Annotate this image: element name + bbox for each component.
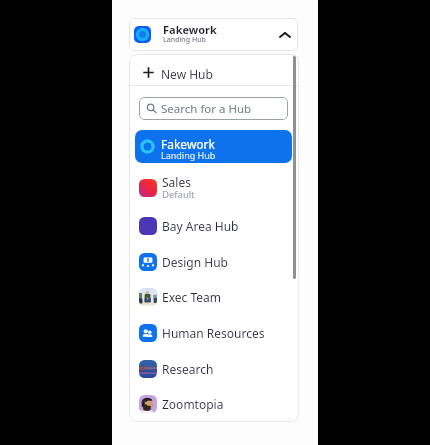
button[interactable]: Sales	[129, 167, 299, 208]
staticText: Landing Hub	[161, 149, 216, 161]
button[interactable]: New Hub	[129, 54, 299, 85]
button[interactable]: Search for a Hub	[139, 97, 288, 120]
button[interactable]: Fakework	[129, 18, 298, 51]
staticText: Zoomtopia	[162, 396, 224, 412]
staticText: Sales	[162, 174, 191, 190]
staticText: Search for a Hub	[161, 101, 252, 117]
staticText: Bay Area Hub	[162, 218, 239, 234]
button[interactable]: Human Resources	[129, 315, 299, 351]
staticText: Landing Hub	[163, 35, 206, 45]
other: Collapse hub list	[278, 28, 292, 42]
button[interactable]: Research	[129, 351, 299, 387]
staticText: Fakework	[161, 136, 215, 152]
button[interactable]: Bay Area Hub	[129, 208, 299, 244]
button[interactable]: Fakework	[135, 130, 292, 163]
staticText: New Hub	[161, 66, 213, 82]
staticText: Design Hub	[162, 254, 228, 270]
staticText: Exec Team	[162, 289, 221, 305]
button[interactable]: Exec Team	[129, 279, 299, 315]
staticText: Fakework	[163, 22, 217, 37]
button[interactable]: Design Hub	[129, 244, 299, 280]
button[interactable]: Zoomtopia	[129, 386, 299, 422]
staticText: Research	[162, 361, 214, 377]
staticText: Human Resources	[162, 325, 265, 341]
staticText: Default	[162, 188, 195, 201]
